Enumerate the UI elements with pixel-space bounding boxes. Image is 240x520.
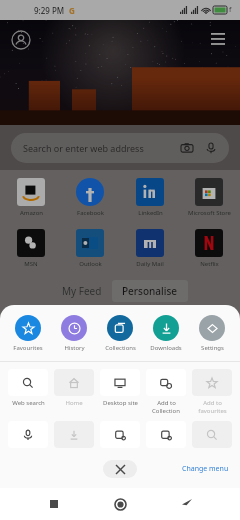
staticText: f (229, 5, 232, 15)
staticText: Facebook (77, 209, 104, 217)
staticText: Daily Mail (136, 260, 164, 268)
staticText: Desktop site (103, 399, 138, 407)
button[interactable]: Home (52, 369, 96, 407)
button[interactable]: History (52, 313, 96, 354)
button[interactable]: Microsoft Store (181, 176, 237, 219)
button[interactable]: Facebook (62, 176, 118, 219)
button[interactable]: LinkedIn (122, 176, 178, 219)
staticText: Netflix (200, 260, 219, 268)
button[interactable]: Home (107, 491, 133, 517)
button[interactable]: MSN (3, 227, 59, 270)
button[interactable] (52, 421, 96, 448)
button[interactable] (6, 421, 50, 448)
button[interactable]: Menu (206, 28, 230, 52)
button[interactable]: Back (174, 491, 200, 517)
button[interactable]: Close menu (103, 460, 137, 478)
staticText: Microsoft Store (188, 209, 231, 217)
staticText: Collection (152, 407, 180, 415)
staticText: Collections (105, 344, 136, 352)
button[interactable]: Favourites (6, 313, 50, 354)
staticText: MSN (24, 260, 38, 268)
staticText: Downloads (150, 344, 182, 352)
button[interactable]: Netflix (181, 227, 237, 270)
staticText: Personalise (122, 284, 178, 298)
button[interactable]: Recents (41, 491, 67, 517)
button[interactable]: Amazon (3, 176, 59, 219)
staticText: History (64, 344, 85, 352)
button[interactable]: Settings (190, 313, 234, 354)
staticText: 9:29 PM (34, 5, 65, 16)
button[interactable]: Add to (190, 369, 234, 415)
button[interactable] (144, 421, 188, 448)
button[interactable]: Desktop site (98, 369, 142, 407)
staticText: Add to (157, 399, 176, 407)
staticText: favourites (198, 407, 227, 415)
button[interactable] (98, 421, 142, 448)
button[interactable]: Downloads (144, 313, 188, 354)
staticText: Search or enter web address (23, 142, 144, 154)
staticText: My Feed (62, 284, 102, 298)
staticText: Settings (201, 344, 224, 352)
button[interactable]: Profile (10, 29, 32, 51)
staticText: Home (65, 399, 83, 407)
button[interactable]: Personalise (112, 280, 188, 302)
button[interactable] (190, 421, 234, 448)
staticText: G (69, 5, 75, 16)
button[interactable]: Search or enter web address (11, 133, 229, 163)
staticText: Web search (12, 399, 45, 407)
staticText: Outlook (79, 260, 102, 268)
button[interactable]: Collections (98, 313, 142, 354)
button[interactable]: Add to (144, 369, 188, 415)
button[interactable]: My Feed (52, 280, 112, 302)
staticText: Amazon (20, 209, 43, 217)
button[interactable]: Outlook (62, 227, 118, 270)
button[interactable]: Change menu (179, 461, 232, 477)
staticText: Favourites (13, 344, 43, 352)
staticText: Change menu (182, 464, 229, 474)
button[interactable]: Daily Mail (122, 227, 178, 270)
staticText: Add to (203, 399, 222, 407)
staticText: LinkedIn (138, 209, 163, 217)
button[interactable]: Web search (6, 369, 50, 407)
